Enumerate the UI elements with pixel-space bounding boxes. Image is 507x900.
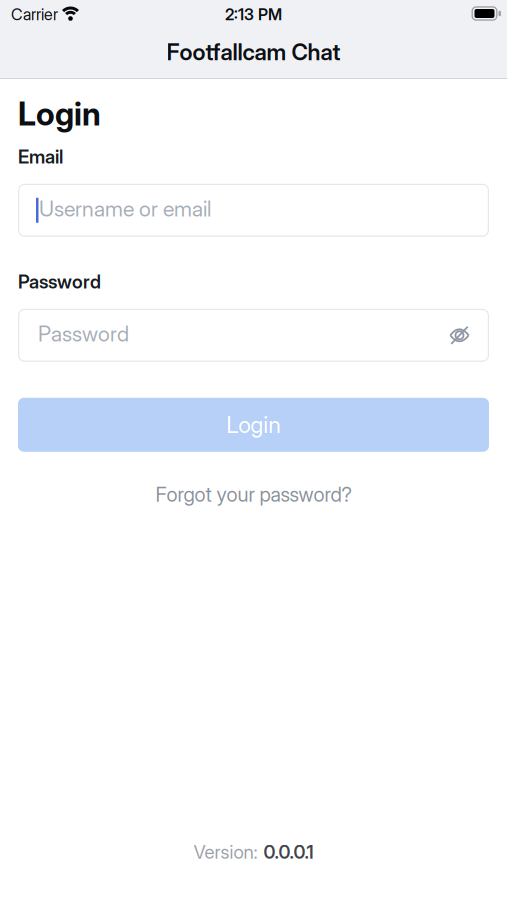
staticText: Forgot your password? <box>155 483 351 506</box>
staticText: Footfallcam Chat <box>166 39 340 65</box>
button[interactable]: Forgot your password? <box>155 483 351 506</box>
staticText: Login <box>226 411 280 438</box>
button[interactable]: Username or email <box>18 184 489 237</box>
staticText: Carrier <box>11 5 58 24</box>
staticText: Password <box>18 271 101 293</box>
staticText: 0.0.0.1 <box>263 841 313 863</box>
staticText: Username or email <box>39 196 211 221</box>
button[interactable] <box>449 325 470 345</box>
button[interactable]: Login <box>18 398 489 452</box>
staticText: 2:13 PM <box>225 5 282 24</box>
staticText: Login <box>18 95 101 133</box>
staticText: Password <box>38 321 129 346</box>
button[interactable]: Password <box>18 309 489 362</box>
staticText: Email <box>18 146 63 168</box>
staticText: Version: <box>193 841 257 863</box>
